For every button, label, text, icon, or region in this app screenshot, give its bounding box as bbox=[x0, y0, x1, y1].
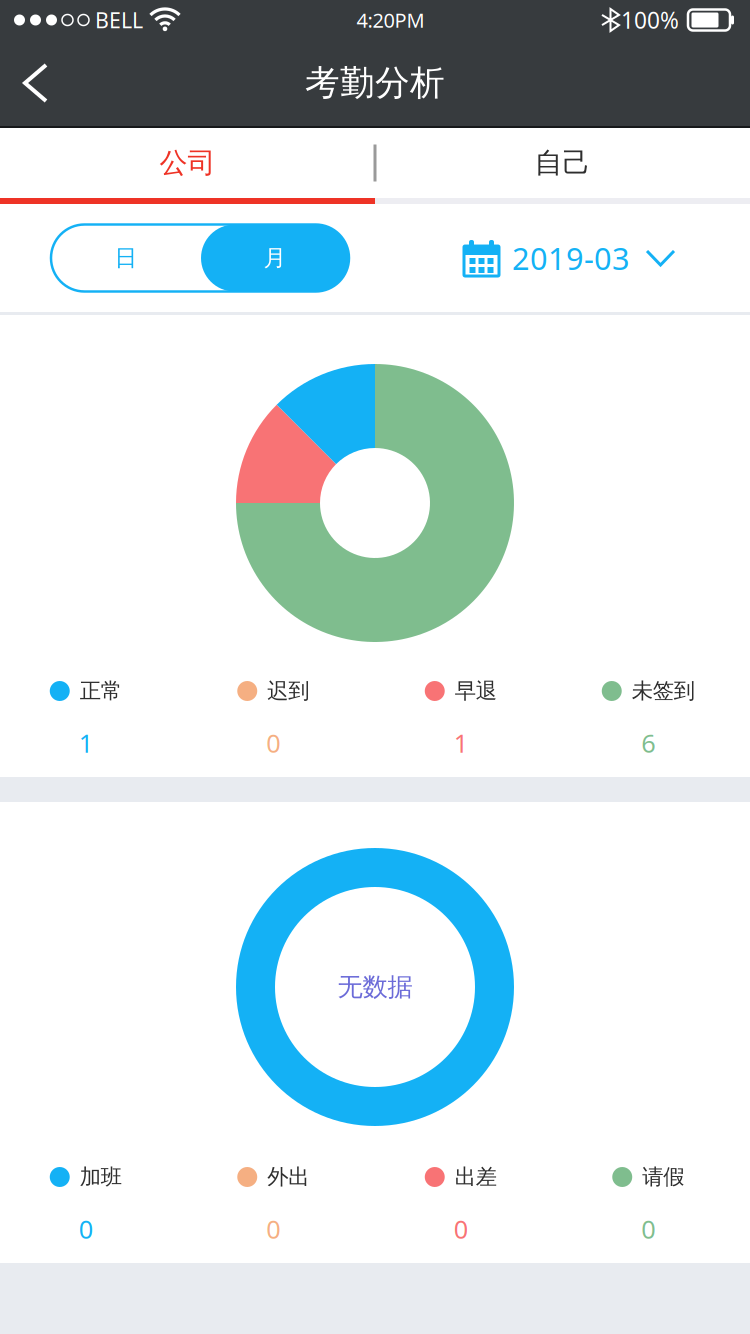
staticText: 加班 bbox=[80, 1164, 122, 1190]
staticText: 月 bbox=[263, 244, 286, 272]
staticText: 6 bbox=[641, 726, 655, 760]
staticText: 1 bbox=[454, 726, 468, 760]
staticText: 100% bbox=[621, 5, 679, 35]
staticText: 未签到 bbox=[632, 678, 695, 704]
staticText: 日 bbox=[114, 244, 137, 272]
staticText: 4:20PM bbox=[356, 7, 424, 33]
staticText: 正常 bbox=[80, 678, 122, 704]
staticText: 0 bbox=[454, 1212, 468, 1246]
staticText: 自己 bbox=[534, 146, 590, 180]
staticText: 迟到 bbox=[267, 678, 309, 704]
staticText: 1 bbox=[79, 726, 93, 760]
staticText: 外出 bbox=[267, 1164, 309, 1190]
staticText: 早退 bbox=[455, 678, 497, 704]
staticText: 请假 bbox=[642, 1164, 684, 1190]
staticText: 考勤分析 bbox=[305, 62, 445, 104]
staticText: 无数据 bbox=[337, 971, 412, 1002]
staticText: 公司 bbox=[159, 146, 215, 180]
button[interactable]: 公司 bbox=[0, 128, 375, 198]
staticText: BELL bbox=[95, 6, 143, 34]
staticText: 出差 bbox=[455, 1164, 497, 1190]
button[interactable]: 2019-03 bbox=[464, 238, 674, 278]
staticText: 0 bbox=[266, 726, 280, 760]
button[interactable]: 日 bbox=[51, 224, 349, 291]
button[interactable]: 自己 bbox=[375, 128, 750, 198]
staticText: 0 bbox=[641, 1212, 655, 1246]
button[interactable]: Back bbox=[0, 40, 80, 126]
staticText: 0 bbox=[79, 1212, 93, 1246]
staticText: 0 bbox=[266, 1212, 280, 1246]
staticText: 2019-03 bbox=[512, 238, 630, 278]
